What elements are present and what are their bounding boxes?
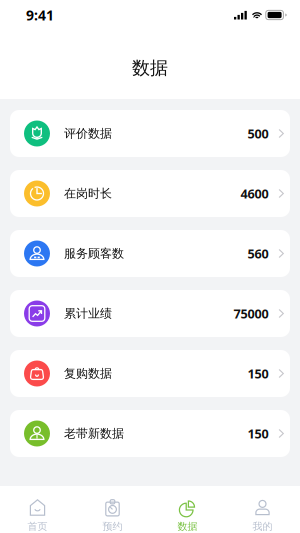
button[interactable]: 服务顾客数 <box>10 230 290 277</box>
staticText: 预约 <box>102 520 122 533</box>
staticText: 老带新数据 <box>64 426 124 441</box>
staticText: 数据 <box>177 520 197 533</box>
staticText: 在岗时长 <box>64 186 112 201</box>
staticText: 复购数据 <box>64 366 112 381</box>
staticText: 服务顾客数 <box>64 246 124 261</box>
staticText: 500 <box>247 125 268 142</box>
button[interactable]: 在岗时长 <box>10 170 290 217</box>
button[interactable]: 我的 <box>225 486 300 533</box>
staticText: 累计业绩 <box>64 306 112 321</box>
staticText: 评价数据 <box>64 126 112 141</box>
button[interactable]: 老带新数据 <box>10 410 290 457</box>
staticText: 560 <box>247 245 268 262</box>
button[interactable]: 累计业绩 <box>10 290 290 337</box>
staticText: 9:41 <box>26 5 54 25</box>
staticText: 150 <box>247 365 268 382</box>
staticText: 150 <box>247 425 268 442</box>
button[interactable]: 复购数据 <box>10 350 290 397</box>
staticText: 75000 <box>233 305 268 322</box>
staticText: 4600 <box>240 185 268 202</box>
staticText: 首页 <box>27 520 47 533</box>
button[interactable]: 预约 <box>75 486 150 533</box>
button[interactable]: 首页 <box>0 486 75 533</box>
button[interactable]: 评价数据 <box>10 110 290 157</box>
staticText: 我的 <box>252 520 272 533</box>
staticText: 数据 <box>132 57 168 79</box>
button[interactable]: 数据 <box>150 486 225 533</box>
